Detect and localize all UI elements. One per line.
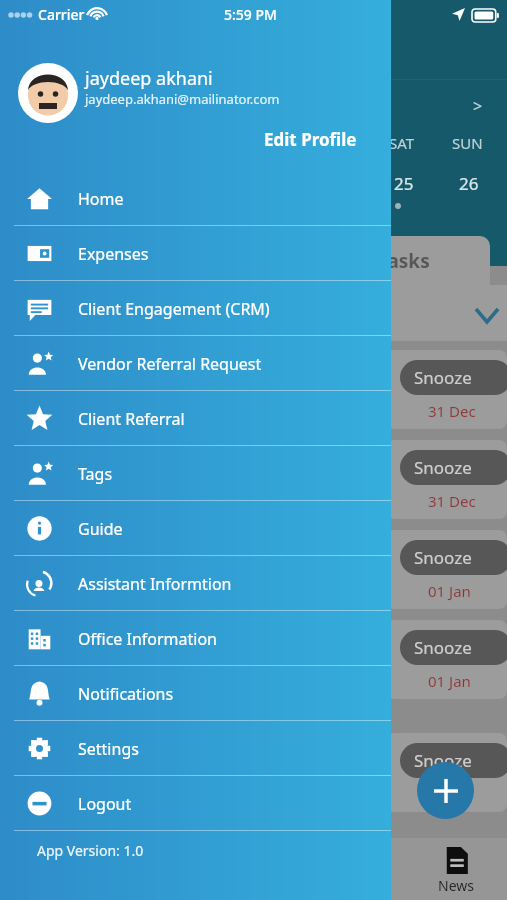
button[interactable]: Snooze [386,620,507,699]
staticText: jaydeep.akhani@mailinator.com [85,90,280,108]
button[interactable]: Snooze [400,630,507,665]
staticText: Home [78,188,124,210]
staticText: > [473,95,483,117]
staticText: Snooze [414,366,472,389]
staticText: Expenses [78,243,149,265]
staticText: 01 Jan [428,581,471,601]
staticText: Edit Profile [264,128,357,151]
button[interactable]: Tasks [358,236,490,285]
staticText: Settings [78,738,139,760]
button[interactable]: Snooze [400,360,507,395]
staticText: SAT [389,133,415,153]
staticText: Carrier [38,5,85,24]
staticText: SUN [452,133,483,153]
button[interactable]: Client Referral [0,391,391,446]
staticText: 01 Jan [428,784,471,804]
button[interactable]: Snooze [386,440,507,519]
button[interactable]: Snooze [400,743,507,778]
button[interactable]: Snooze [386,350,507,429]
button[interactable]: Add [417,762,474,819]
button[interactable]: Edit Profile [258,122,363,157]
staticText: jaydeep akhani [85,66,213,91]
staticText: Snooze [414,546,472,569]
button[interactable]: Settings [0,721,391,776]
staticText: 26 [459,172,479,195]
button[interactable]: Snooze [400,450,507,485]
staticText: Guide [78,518,123,540]
staticText: 5:59 PM [224,5,277,24]
button[interactable]: Home [0,171,391,226]
button[interactable]: Office Information [0,611,391,666]
staticText: 25 [394,172,414,195]
button[interactable]: Assistant Informtion [0,556,391,611]
staticText: App Version: 1.0 [37,841,144,860]
button[interactable]: Logout [0,776,391,831]
button[interactable]: Snooze [386,733,507,812]
staticText: Snooze [414,749,472,772]
staticText: Logout [78,793,132,815]
staticText: Vendor Referral Request [78,353,262,375]
button[interactable]: Snooze [386,530,507,609]
staticText: News [438,876,474,895]
button[interactable]: Vendor Referral Request [0,336,391,391]
other: Expand [476,309,498,322]
button[interactable]: News [419,841,493,900]
button[interactable]: Expenses [0,226,391,281]
button[interactable] [18,63,78,123]
staticText: Assistant Informtion [78,573,232,595]
button[interactable]: Tags [0,446,391,501]
staticText: Client Engagement (CRM) [78,298,270,320]
staticText: 31 Dec [428,401,476,421]
button[interactable]: Guide [0,501,391,556]
button[interactable]: Notifications [0,666,391,721]
staticText: Client Referral [78,408,185,430]
button[interactable]: Client Engagement (CRM) [0,281,391,336]
staticText: Office Information [78,628,218,650]
button[interactable]: Snooze [400,540,507,575]
staticText: Notifications [78,683,174,705]
staticText: Tags [78,463,113,485]
staticText: Snooze [414,456,472,479]
staticText: 31 Dec [428,491,476,511]
staticText: Snooze [414,636,472,659]
staticText: Tasks [378,248,430,274]
staticText: 01 Jan [428,671,471,691]
